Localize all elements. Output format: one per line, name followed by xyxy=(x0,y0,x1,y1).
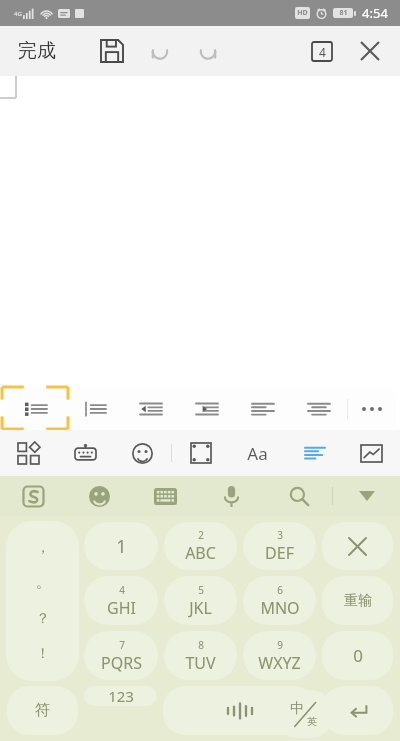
button[interactable]: 1 xyxy=(84,522,158,570)
staticText: 符 xyxy=(35,701,50,720)
button[interactable]: Bullet list xyxy=(4,388,67,430)
staticText: 。 xyxy=(36,574,50,592)
button[interactable]: Paragraph xyxy=(286,430,343,476)
staticText: 2 xyxy=(198,528,204,542)
button[interactable]: 重输 xyxy=(322,576,393,625)
staticText: TUV xyxy=(185,652,216,674)
button[interactable]: Undo xyxy=(138,29,182,73)
staticText: GHI xyxy=(107,597,136,619)
button[interactable]: 4 xyxy=(84,576,158,625)
button[interactable]: 6 xyxy=(243,576,316,625)
button[interactable]: Space xyxy=(163,686,316,735)
staticText: ， xyxy=(36,539,50,557)
staticText: 4G xyxy=(14,10,22,18)
button[interactable]: Align left xyxy=(235,388,291,430)
staticText: 1 xyxy=(116,534,127,559)
button[interactable]: Sogou xyxy=(0,476,66,516)
button[interactable]: Backspace xyxy=(322,522,393,570)
button[interactable]: 2 xyxy=(164,522,237,570)
staticText: ？ xyxy=(36,610,50,628)
button[interactable]: Decrease indent xyxy=(123,388,179,430)
staticText: 81 xyxy=(339,8,348,18)
staticText: Aa xyxy=(247,442,268,465)
button[interactable]: Redo xyxy=(186,29,230,73)
button[interactable]: Widgets xyxy=(0,430,57,476)
staticText: ！ xyxy=(36,645,50,663)
button[interactable]: 0 xyxy=(322,631,393,680)
button[interactable]: Font xyxy=(229,430,286,476)
staticText: PQRS xyxy=(101,652,142,674)
staticText: 7 xyxy=(119,638,125,652)
staticText: 英 xyxy=(307,715,317,728)
staticText: 5 xyxy=(198,583,204,597)
button[interactable]: 8 xyxy=(164,631,237,680)
staticText: 123 xyxy=(108,686,134,706)
staticText: JKL xyxy=(189,597,212,619)
staticText: 9 xyxy=(277,638,283,652)
button[interactable]: Collapse keyboard xyxy=(333,476,400,516)
staticText: 重输 xyxy=(344,592,372,610)
staticText: 6 xyxy=(277,583,283,597)
button[interactable]: Search xyxy=(265,476,332,516)
staticText: HD xyxy=(297,8,308,18)
button[interactable]: 符 xyxy=(7,686,78,735)
button[interactable]: Scan xyxy=(172,430,229,476)
staticText: DEF xyxy=(265,542,294,564)
button[interactable]: Increase indent xyxy=(179,388,235,430)
staticText: MNO xyxy=(260,597,300,619)
button[interactable]: Keyboard tool xyxy=(57,430,114,476)
button[interactable]: 3 xyxy=(243,522,316,570)
button[interactable]: Emoji xyxy=(114,430,171,476)
button[interactable]: Save xyxy=(90,29,134,73)
staticText: 中 xyxy=(290,700,304,718)
staticText: WXYZ xyxy=(258,652,301,674)
staticText: 4 xyxy=(119,583,125,597)
button[interactable]: 9 xyxy=(243,631,316,680)
button[interactable]: 完成 xyxy=(12,35,62,67)
staticText: 完成 xyxy=(18,39,56,63)
staticText: 4:54 xyxy=(362,4,388,22)
button[interactable]: Switch Chinese English xyxy=(275,690,333,738)
button[interactable]: Align center xyxy=(291,388,347,430)
button[interactable]: Voice input xyxy=(198,476,265,516)
button[interactable]: ， xyxy=(6,521,79,681)
button[interactable]: Enter xyxy=(322,686,393,735)
button[interactable]: 7 xyxy=(84,631,158,680)
button[interactable]: Tabs: 4 xyxy=(302,31,342,71)
staticText: ABC xyxy=(185,542,216,564)
staticText: 4 xyxy=(319,44,326,60)
button[interactable]: 123 xyxy=(84,686,157,706)
button[interactable]: 5 xyxy=(164,576,237,625)
button[interactable]: Insert image xyxy=(343,430,400,476)
button[interactable]: Numbered list xyxy=(67,388,123,430)
button[interactable]: More xyxy=(348,388,396,430)
button[interactable]: Emoji xyxy=(66,476,132,516)
staticText: 0 xyxy=(353,644,363,667)
staticText: 3 xyxy=(277,528,283,542)
button[interactable]: Keyboard layout xyxy=(132,476,198,516)
button[interactable]: Close xyxy=(348,29,392,73)
staticText: 8 xyxy=(198,638,204,652)
